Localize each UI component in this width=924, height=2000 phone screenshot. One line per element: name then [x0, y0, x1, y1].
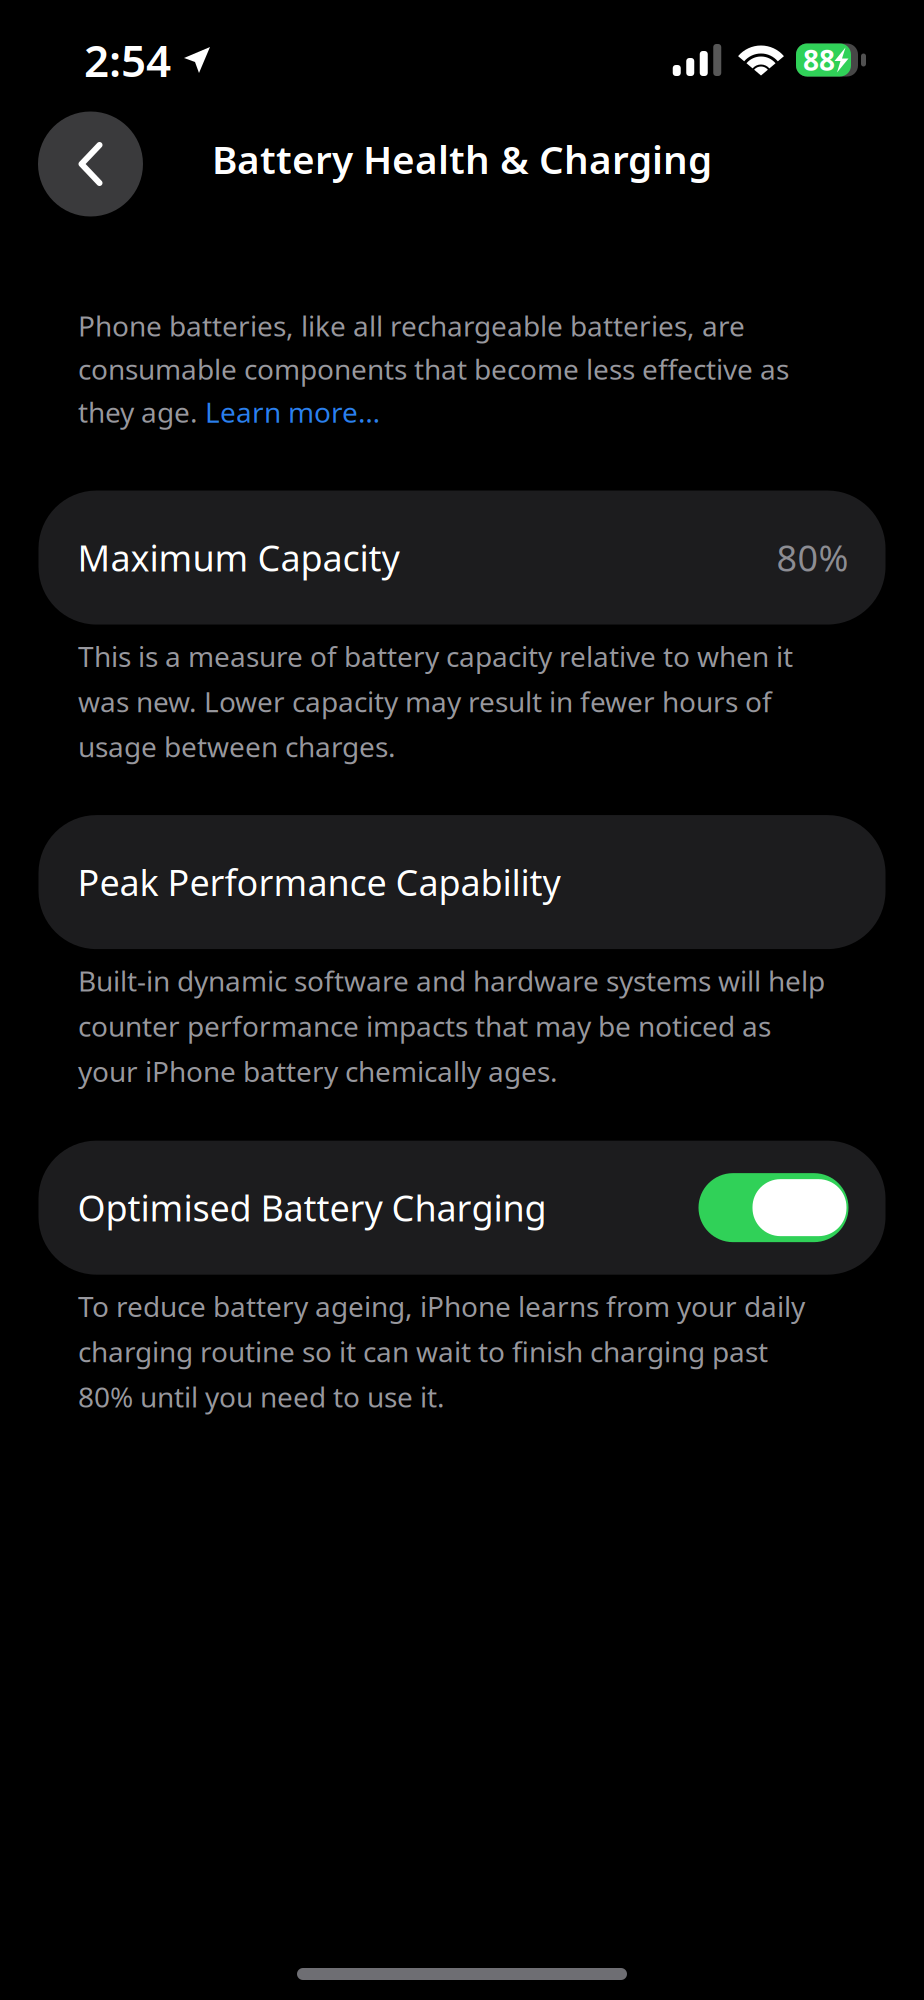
- button[interactable]: Maximum Capacity: [38, 490, 885, 624]
- staticText: Phone batteries, like all rechargeable b…: [78, 307, 745, 344]
- staticText: Built-in dynamic software and hardware s…: [78, 962, 825, 1090]
- staticText: To reduce battery ageing, iPhone learns …: [78, 1288, 805, 1415]
- staticText: This is a measure of battery capacity re…: [78, 637, 793, 765]
- staticText: Learn more…: [205, 393, 380, 431]
- staticText: Optimised Battery Charging: [77, 1184, 546, 1231]
- button[interactable]: Peak Performance Capability: [38, 815, 885, 949]
- staticText: consumable components that become less e…: [78, 350, 789, 387]
- staticText: they age.: [78, 393, 205, 431]
- staticText: Battery Health & Charging: [212, 133, 712, 185]
- button[interactable]: Back: [38, 111, 143, 216]
- staticText: Peak Performance Capability: [77, 858, 560, 906]
- staticText: 88: [803, 41, 835, 79]
- staticText: 80%: [776, 534, 848, 581]
- button[interactable]: Optimised Battery Charging: [38, 1141, 885, 1275]
- staticText: Maximum Capacity: [77, 534, 399, 581]
- staticText: 2:54: [84, 31, 171, 89]
